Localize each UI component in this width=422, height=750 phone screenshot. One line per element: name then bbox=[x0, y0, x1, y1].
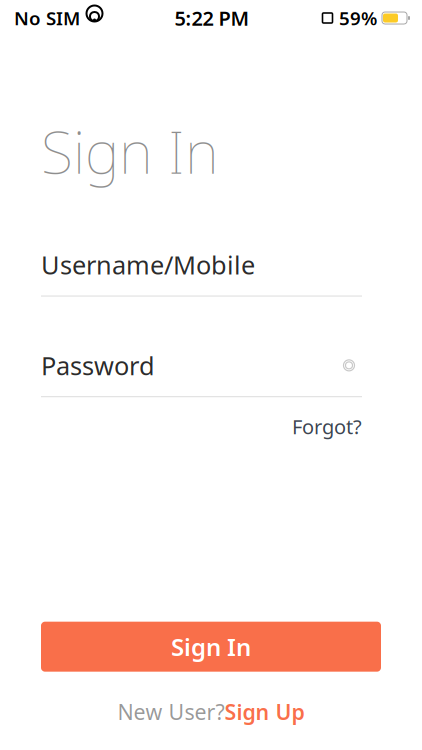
staticText: Sign In bbox=[171, 631, 251, 663]
staticText: 59% bbox=[339, 6, 377, 30]
staticText: Sign Up bbox=[224, 698, 304, 726]
staticText: New User? bbox=[117, 698, 224, 726]
button[interactable]: Show password bbox=[336, 354, 362, 376]
button[interactable]: Forgot? bbox=[292, 409, 362, 444]
staticText: Username/Mobile bbox=[41, 248, 255, 281]
staticText: Password bbox=[41, 348, 155, 382]
staticText: Sign In bbox=[41, 112, 219, 190]
button[interactable]: Sign In bbox=[41, 622, 381, 672]
staticText: No SIM bbox=[14, 6, 80, 30]
button[interactable]: New User? bbox=[117, 692, 304, 732]
staticText: Forgot? bbox=[292, 413, 362, 440]
staticText: 5:22 PM bbox=[174, 5, 249, 31]
